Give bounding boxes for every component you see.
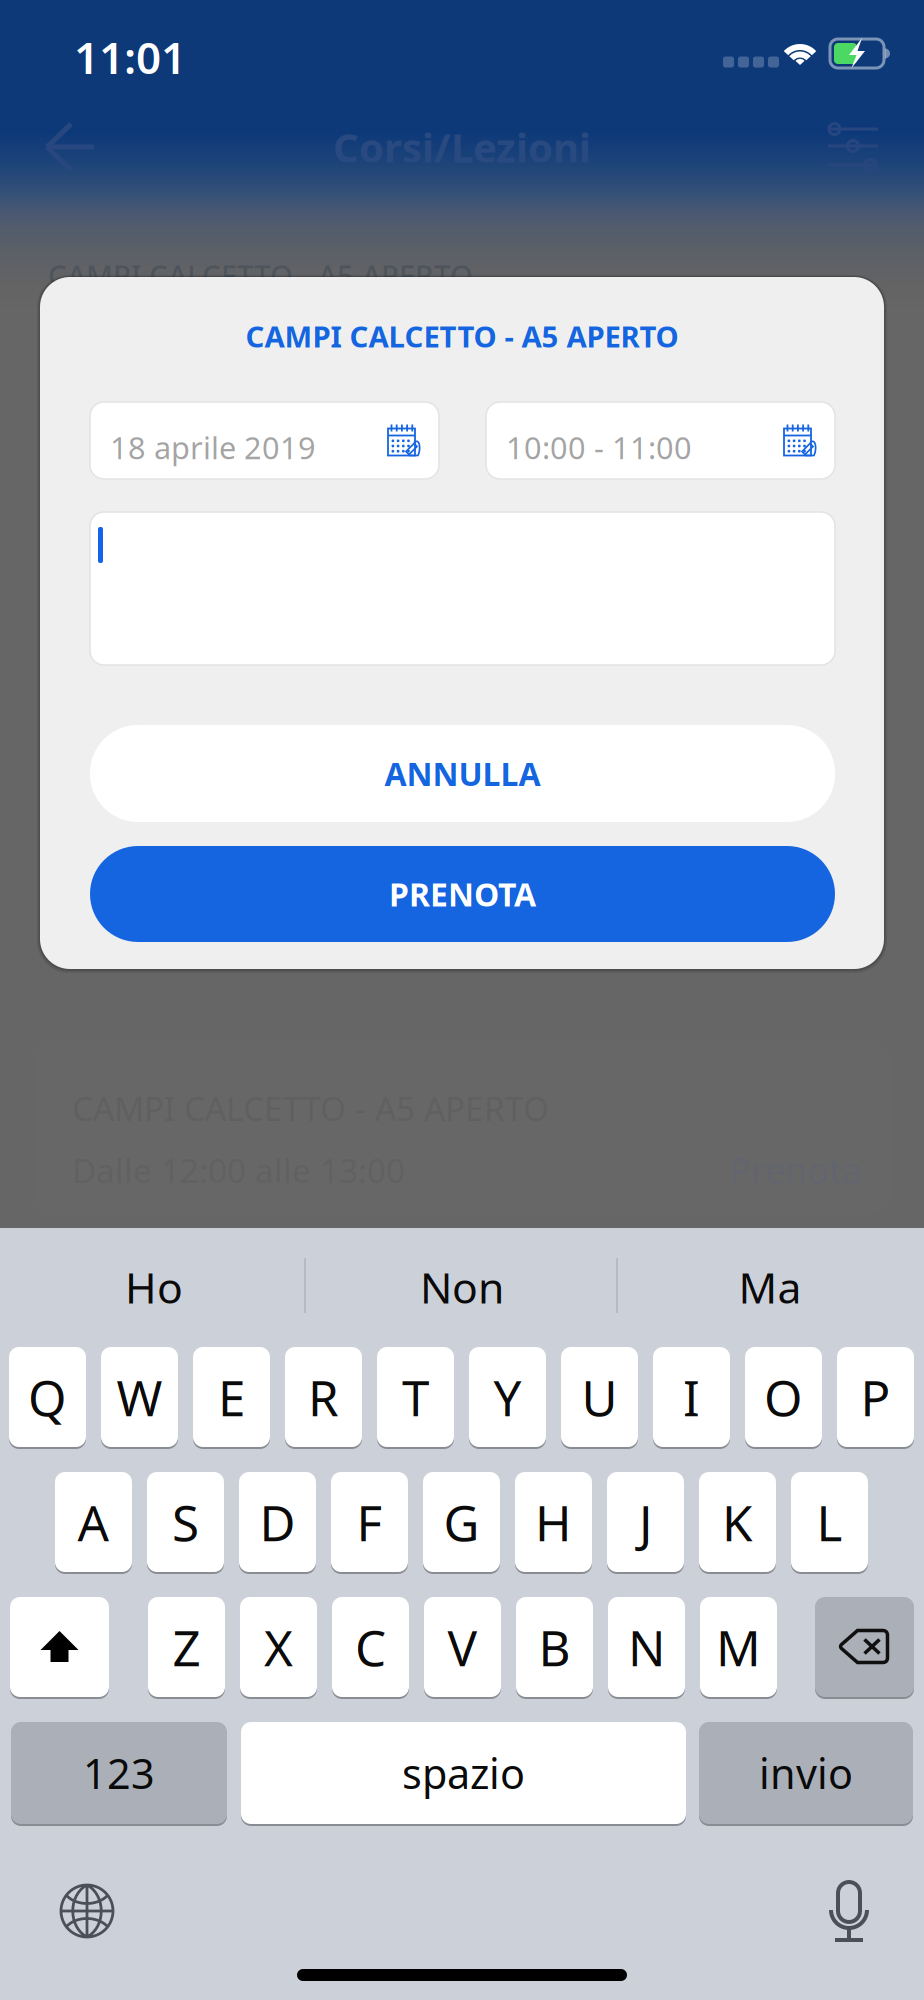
button[interactable]: H [515,1471,592,1573]
button[interactable]: Back [44,121,96,173]
button[interactable]: E [193,1346,270,1448]
button[interactable]: J [607,1471,684,1573]
staticText: Z [172,1614,200,1680]
button[interactable]: Filter [828,128,878,168]
button[interactable]: PRENOTA [90,846,835,942]
staticText: K [722,1489,753,1555]
staticText: Non [420,1259,504,1315]
button[interactable]: L [791,1471,868,1573]
staticText: G [443,1489,479,1555]
staticText: P [860,1364,890,1430]
staticText: 11:01 [74,28,186,86]
button[interactable]: D [239,1471,316,1573]
button[interactable]: B [516,1596,593,1698]
button[interactable]: T [377,1346,454,1448]
staticText: spazio [402,1746,525,1800]
button[interactable]: ANNULLA [90,725,835,822]
staticText: 123 [83,1746,155,1800]
staticText: U [581,1364,617,1430]
staticText: X [264,1614,293,1680]
staticText: 10:00 - 11:00 [506,427,692,468]
staticText: invio [759,1746,853,1800]
button[interactable]: Next keyboard [59,1883,115,1939]
button[interactable]: spazio [241,1721,686,1825]
button[interactable] [10,1596,109,1698]
staticText: M [716,1614,761,1680]
button[interactable]: R [285,1346,362,1448]
staticText: V [447,1614,477,1680]
button[interactable]: I [653,1346,730,1448]
button[interactable]: invio [699,1721,913,1825]
button[interactable]: Z [148,1596,225,1698]
button[interactable]: C [332,1596,409,1698]
button[interactable]: O [745,1346,822,1448]
button[interactable]: G [423,1471,500,1573]
button[interactable]: N [608,1596,685,1698]
button[interactable]: Y [469,1346,546,1448]
staticText: ANNULLA [384,752,540,795]
staticText: O [764,1364,803,1430]
staticText: J [639,1489,652,1555]
staticText: Ho [125,1259,183,1315]
staticText: E [218,1364,245,1430]
button[interactable]: 123 [11,1721,227,1825]
button[interactable]: U [561,1346,638,1448]
staticText: A [77,1489,109,1555]
button[interactable] [815,1596,914,1698]
staticText: CAMPI CALCETTO - A5 APERTO [245,316,678,355]
staticText: CAMPI CALCETTO - A5 APERTO [48,255,473,294]
button[interactable]: Q [9,1346,86,1448]
staticText: D [259,1489,295,1555]
button[interactable]: 10:00 - 11:00 [486,402,835,479]
staticText: F [356,1489,382,1555]
staticText: S [172,1489,199,1555]
button[interactable]: 18 aprile 2019 [90,402,439,479]
staticText: H [535,1489,572,1555]
button[interactable]: P [837,1346,914,1448]
staticText: R [308,1364,339,1430]
button[interactable]: S [147,1471,224,1573]
staticText: PRENOTA [389,873,536,915]
staticText: B [538,1614,570,1680]
staticText: Corsi/Lezioni [333,120,591,173]
staticText: C [355,1614,386,1680]
staticText: 18 aprile 2019 [110,427,316,468]
staticText: W [116,1364,162,1430]
button[interactable]: A [55,1471,132,1573]
button[interactable]: V [424,1596,501,1698]
button[interactable]: W [101,1346,178,1448]
button[interactable]: M [700,1596,777,1698]
button[interactable]: X [240,1596,317,1698]
staticText: L [816,1489,842,1555]
staticText: Y [493,1364,521,1430]
staticText: I [683,1364,700,1430]
button[interactable]: Dictation [827,1882,871,1942]
button[interactable]: F [331,1471,408,1573]
staticText: Ma [738,1259,801,1315]
staticText: T [402,1364,429,1430]
staticText: Q [28,1364,67,1430]
staticText: N [628,1614,665,1680]
button[interactable]: K [699,1471,776,1573]
